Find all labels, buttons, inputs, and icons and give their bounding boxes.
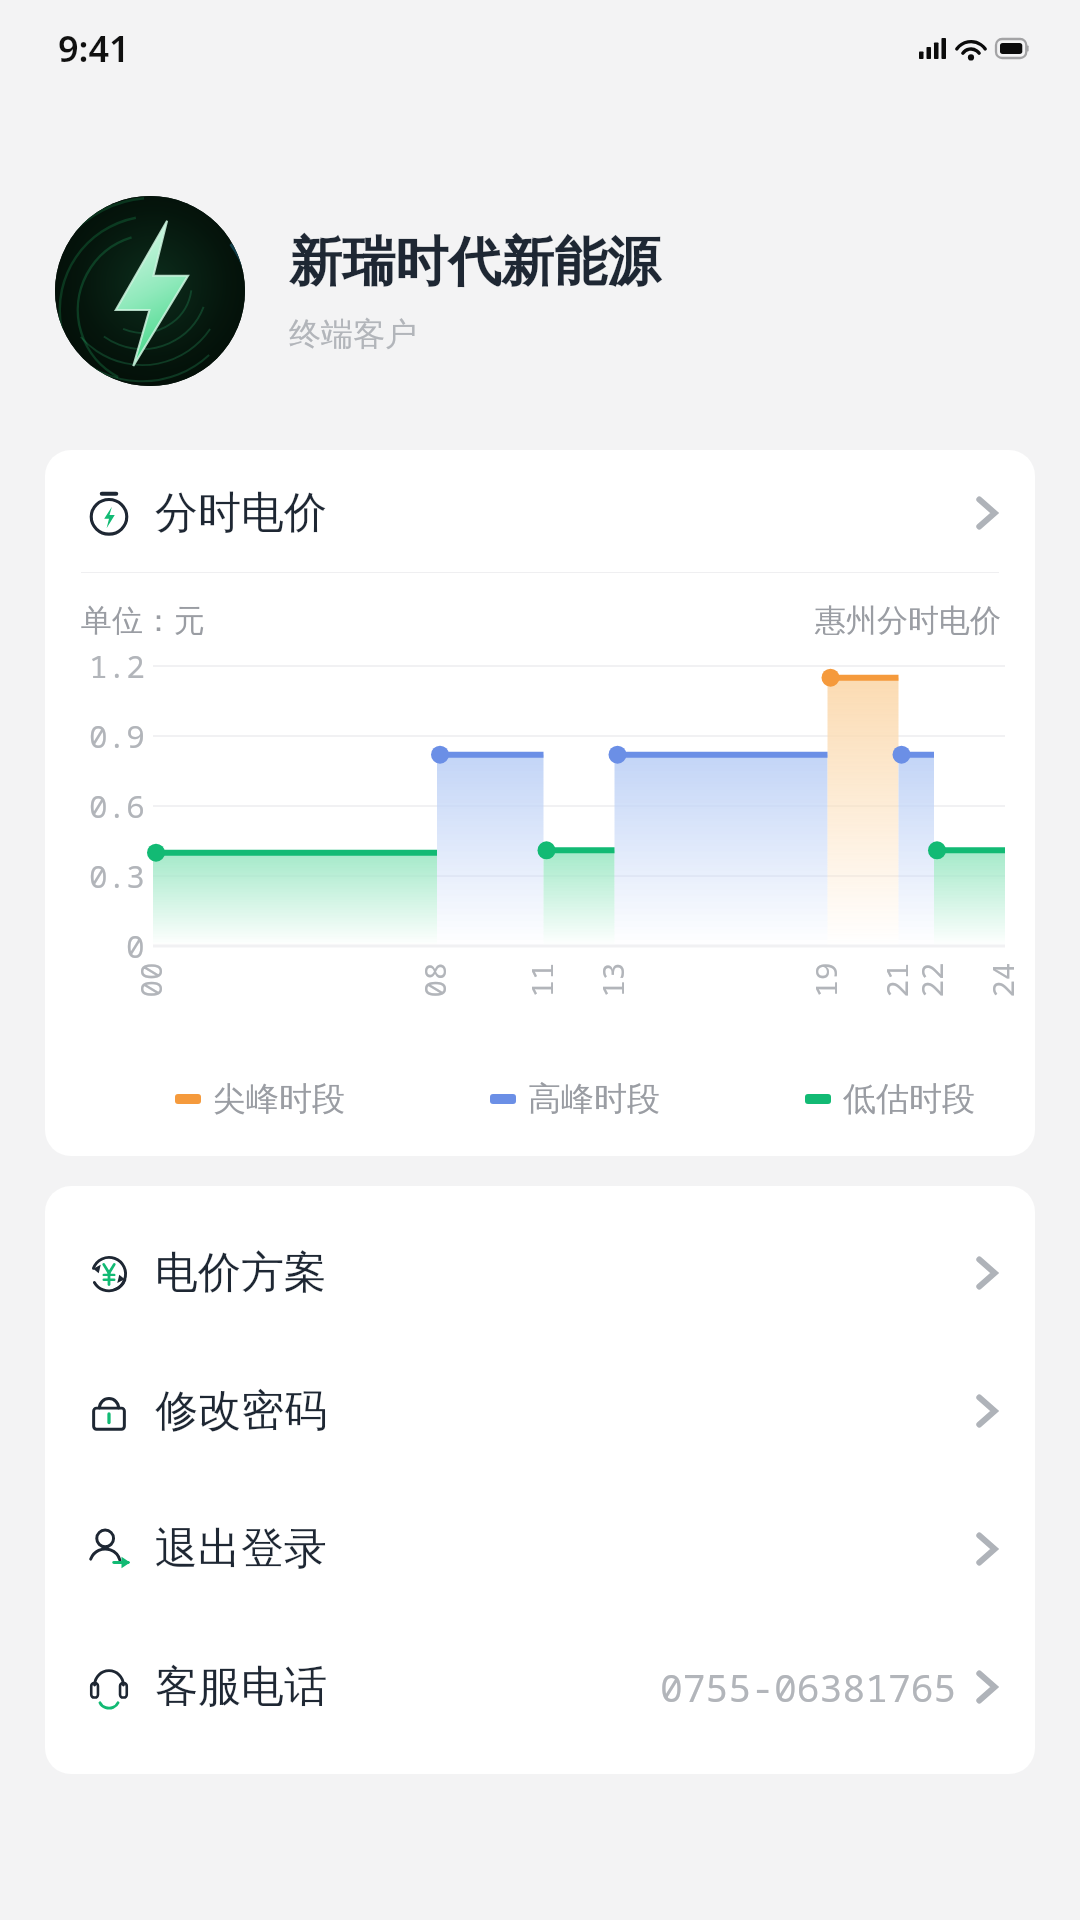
staticText: 08:00: [415, 958, 459, 1002]
staticText: 尖峰时段: [213, 1078, 345, 1120]
button[interactable]: 退出登录: [45, 1480, 1035, 1618]
staticText: 修改密码: [155, 1384, 327, 1438]
button[interactable]: 客服电话: [45, 1618, 1035, 1756]
staticText: 电价方案: [155, 1246, 327, 1300]
staticText: 21:00: [877, 958, 921, 1002]
staticText: 单位：元: [81, 601, 205, 640]
staticText: 24:00: [983, 958, 1027, 1002]
staticText: 9:41: [58, 24, 130, 73]
staticText: 13:00: [593, 958, 637, 1002]
staticText: 00:00: [131, 958, 175, 1002]
staticText: 高峰时段: [528, 1078, 660, 1120]
staticText: 0.3: [89, 855, 145, 897]
button[interactable]: 电价方案: [45, 1204, 1035, 1342]
staticText: 0.9: [89, 715, 145, 757]
button[interactable]: 新瑞时代新能源: [55, 196, 1040, 386]
staticText: 22:00: [912, 958, 956, 1002]
staticText: 19:00: [806, 958, 850, 1002]
staticText: 惠州分时电价: [815, 601, 1001, 640]
staticText: 分时电价: [155, 486, 327, 540]
staticText: 0755-06381765: [660, 1661, 957, 1713]
staticText: 客服电话: [155, 1660, 327, 1714]
staticText: 退出登录: [155, 1522, 327, 1576]
staticText: 1.2: [89, 645, 145, 687]
staticText: 0.6: [89, 785, 145, 827]
staticText: 0: [126, 925, 145, 967]
button[interactable]: 修改密码: [45, 1342, 1035, 1480]
button[interactable]: 分时电价: [45, 450, 1035, 572]
staticText: 11:00: [522, 958, 566, 1002]
staticText: 低估时段: [843, 1078, 975, 1120]
staticText: 终端客户: [289, 314, 417, 354]
staticText: 新瑞时代新能源: [289, 229, 660, 296]
